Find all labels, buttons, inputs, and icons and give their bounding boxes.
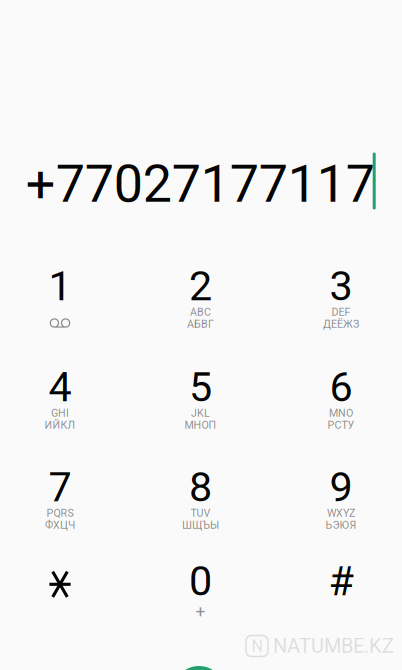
button[interactable]: 5 — [144, 339, 256, 435]
staticText: # — [328, 557, 353, 605]
button[interactable]: 7 — [4, 439, 116, 535]
staticText: ДЕЁЖЗ — [323, 318, 359, 330]
staticText: NATUMBE.KZ — [273, 634, 394, 658]
button[interactable]: 4 — [4, 339, 116, 435]
staticText: 7 — [48, 463, 71, 511]
staticText: TUV — [190, 507, 210, 519]
staticText: JKL — [191, 407, 210, 419]
staticText: ФХЦЧ — [45, 519, 75, 531]
staticText: GHI — [51, 407, 69, 419]
staticText: РСТУ — [327, 419, 354, 431]
staticText: PQRS — [46, 507, 73, 519]
staticText: ИЙКЛ — [44, 419, 75, 431]
staticText: 2 — [189, 262, 212, 310]
button[interactable]: 2 — [144, 238, 256, 334]
staticText: 4 — [48, 363, 71, 411]
staticText: 8 — [189, 463, 212, 511]
staticText: 6 — [329, 363, 352, 411]
button[interactable] — [4, 533, 116, 629]
staticText: DEF — [331, 306, 350, 318]
button[interactable]: 9 — [285, 439, 397, 535]
staticText: 9 — [329, 463, 352, 511]
staticText: N — [251, 637, 262, 655]
button[interactable]: 8 — [144, 439, 256, 535]
staticText: 1 — [48, 262, 71, 310]
staticText: МНОП — [184, 419, 216, 431]
staticText: ЬЭЮЯ — [325, 519, 356, 531]
button[interactable]: # — [285, 533, 397, 629]
button[interactable]: 0 — [144, 533, 256, 629]
button[interactable]: 3 — [285, 238, 397, 334]
staticText: MNO — [329, 407, 353, 419]
staticText: 3 — [329, 262, 352, 310]
button[interactable]: 6 — [285, 339, 397, 435]
staticText: 0 — [189, 557, 212, 605]
staticText: WXYZ — [327, 507, 355, 519]
staticText: ABC — [190, 306, 211, 318]
staticText: ШЩЪЫ — [182, 519, 219, 531]
staticText: + — [195, 601, 205, 621]
staticText: АБВГ — [187, 318, 214, 330]
staticText: 5 — [189, 363, 212, 411]
staticText: +77027177117 — [26, 153, 375, 214]
button[interactable]: Call — [173, 666, 225, 670]
button[interactable]: 1 — [4, 238, 116, 334]
